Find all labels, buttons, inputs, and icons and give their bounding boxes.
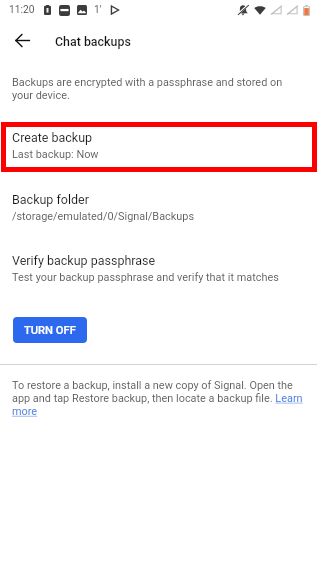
staticText: Backup folder <box>12 192 89 207</box>
staticText: TURN OFF <box>24 324 76 337</box>
staticText: 1' <box>94 4 102 16</box>
button[interactable]: Create backup <box>0 126 317 167</box>
button[interactable]: Back <box>8 26 36 54</box>
button[interactable]: Verify backup passphrase <box>0 249 317 290</box>
staticText: Backups are encrypted with a passphrase … <box>12 76 302 102</box>
staticText: Chat backups <box>55 34 131 49</box>
staticText: Create backup <box>12 130 93 145</box>
staticText: Test your backup passphrase and verify t… <box>12 271 279 284</box>
staticText: 11:20 <box>9 4 35 16</box>
staticText: Verify backup passphrase <box>12 253 156 268</box>
staticText: Last backup: Now <box>12 148 99 161</box>
button[interactable]: TURN OFF <box>13 317 87 343</box>
staticText: /storage/emulated/0/Signal/Backups <box>12 210 195 223</box>
staticText: To restore a backup, install a new copy … <box>12 379 304 418</box>
button[interactable]: Backup folder <box>0 188 317 229</box>
